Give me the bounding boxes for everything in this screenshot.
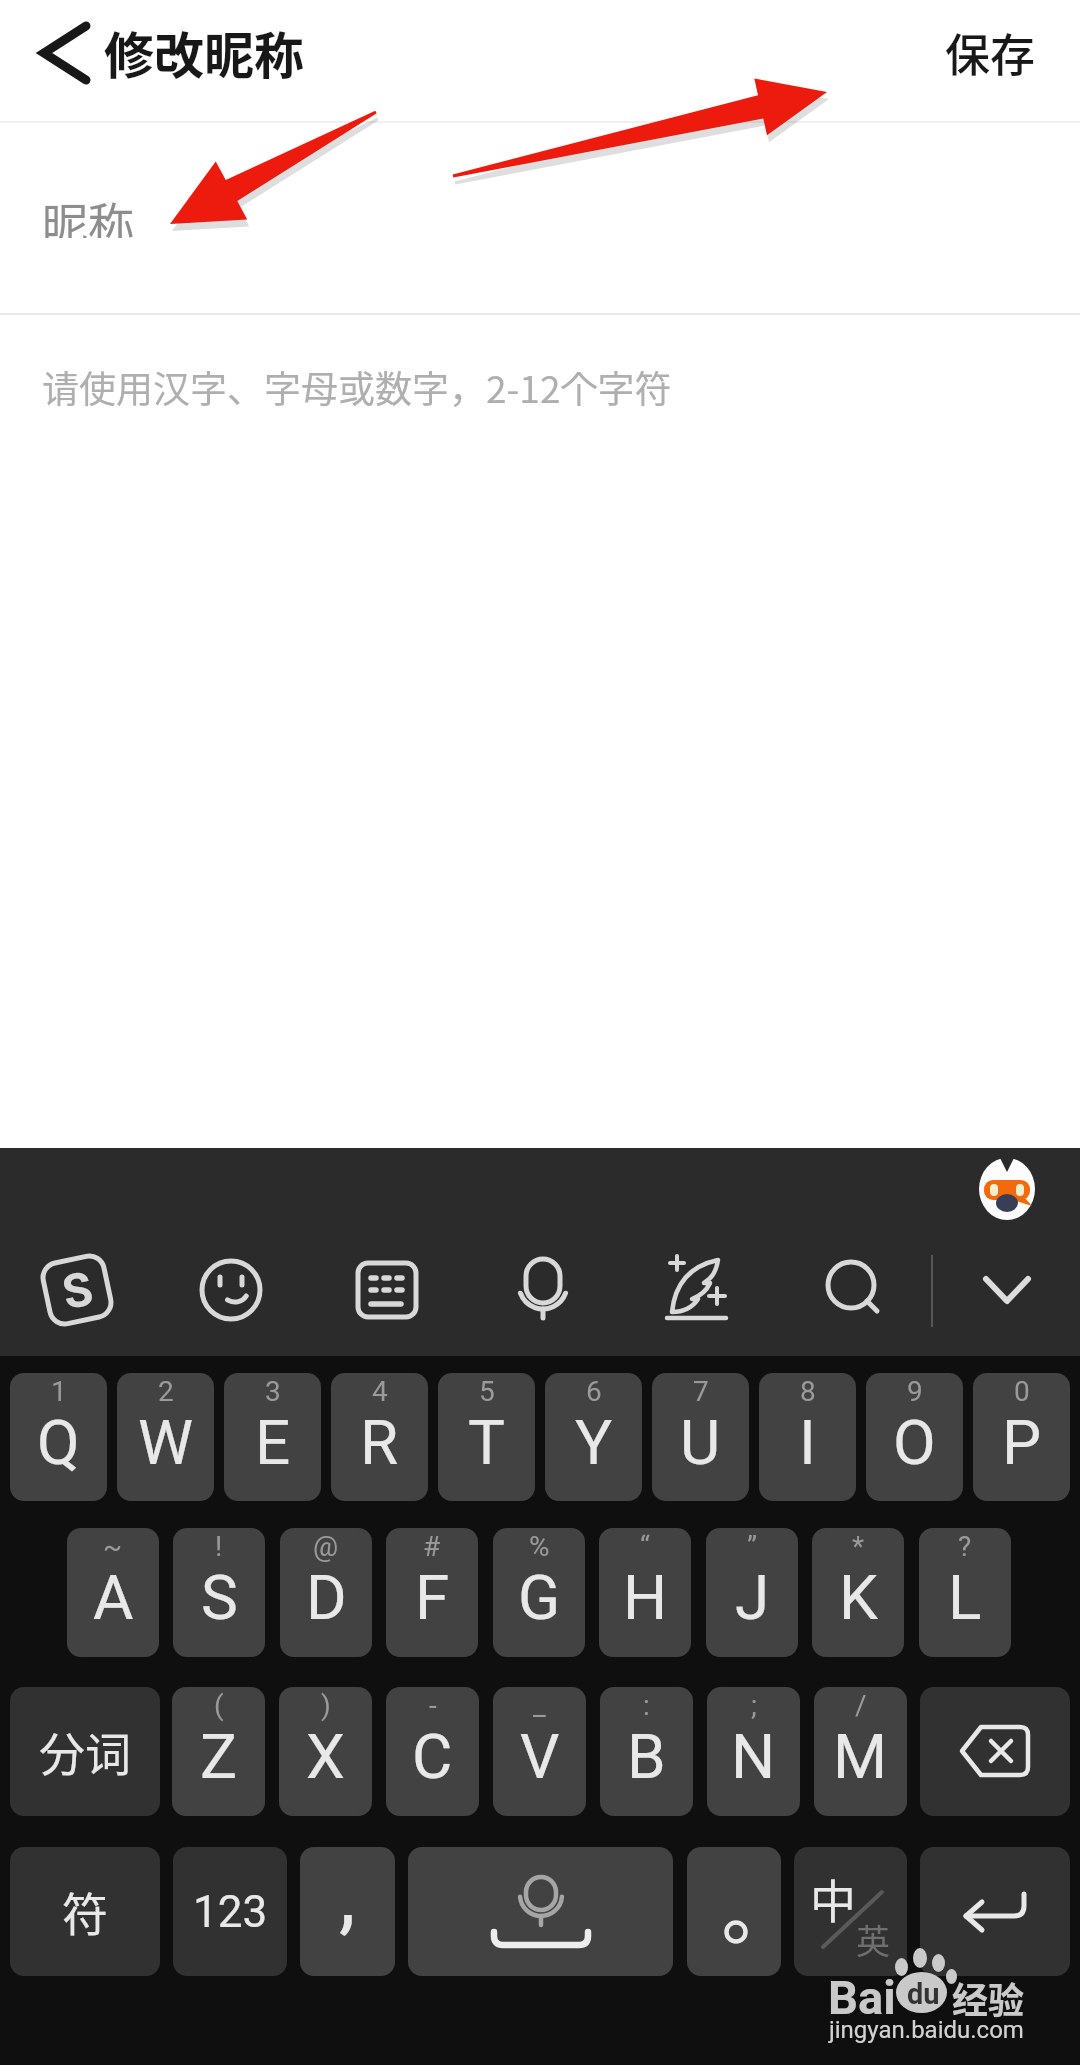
staticText: / xyxy=(855,1689,867,1722)
staticText: : xyxy=(643,1689,650,1722)
staticText: P xyxy=(1002,1406,1042,1479)
staticText: J xyxy=(735,1561,770,1634)
staticText: - xyxy=(429,1689,437,1722)
button[interactable]: % xyxy=(493,1528,585,1657)
button[interactable]: 5 xyxy=(438,1373,535,1501)
staticText: M xyxy=(833,1720,888,1793)
staticText: _ xyxy=(533,1689,546,1722)
staticText: F xyxy=(415,1561,450,1634)
button[interactable]: ” xyxy=(706,1528,798,1657)
staticText: % xyxy=(529,1530,550,1563)
button[interactable]: * xyxy=(812,1528,904,1657)
staticText: 123 xyxy=(193,1886,268,1938)
button[interactable] xyxy=(24,10,104,96)
staticText: 0 xyxy=(1014,1375,1030,1408)
staticText: 1 xyxy=(51,1375,67,1408)
staticText: 保存 xyxy=(945,20,1036,85)
staticText: Z xyxy=(200,1720,238,1793)
button[interactable]: ! xyxy=(173,1528,265,1657)
staticText: ~ xyxy=(103,1530,123,1563)
staticText: 3 xyxy=(265,1375,281,1408)
staticText: 7 xyxy=(693,1375,709,1408)
staticText: G xyxy=(518,1561,561,1634)
button[interactable]: “ xyxy=(599,1528,691,1657)
button[interactable]: , xyxy=(300,1847,395,1976)
staticText: I xyxy=(799,1406,816,1479)
staticText: du xyxy=(907,1977,940,2011)
button[interactable]: 3 xyxy=(224,1373,321,1501)
button[interactable]: 2 xyxy=(117,1373,214,1501)
button[interactable]: _ xyxy=(493,1687,586,1816)
staticText: @ xyxy=(313,1530,339,1563)
staticText: # xyxy=(423,1530,441,1563)
staticText: ) xyxy=(321,1689,331,1722)
staticText: 符 xyxy=(62,1878,108,1945)
staticText: ; xyxy=(751,1689,757,1722)
button[interactable]: 0 xyxy=(973,1373,1070,1501)
button[interactable]: 保存 xyxy=(930,14,1050,90)
button[interactable]: ; xyxy=(707,1687,800,1816)
staticText: 昵称 xyxy=(42,188,134,238)
button[interactable]: - xyxy=(386,1687,479,1816)
staticText: ! xyxy=(215,1530,223,1563)
button[interactable]: S xyxy=(38,1251,116,1329)
staticText: Q xyxy=(37,1406,80,1479)
button[interactable]: ? xyxy=(919,1528,1011,1657)
button[interactable]: ( xyxy=(172,1687,265,1816)
staticText: U xyxy=(680,1406,721,1479)
button[interactable] xyxy=(687,1847,781,1976)
button[interactable] xyxy=(408,1847,673,1976)
staticText: W xyxy=(138,1406,194,1479)
staticText: * xyxy=(852,1530,865,1563)
staticText: 4 xyxy=(372,1375,388,1408)
staticText: H xyxy=(623,1561,668,1634)
staticText: E xyxy=(255,1406,291,1479)
button[interactable]: 分词 xyxy=(10,1687,160,1816)
button[interactable]: 8 xyxy=(759,1373,856,1501)
staticText: 经验 xyxy=(952,1972,1025,2018)
staticText: , xyxy=(339,1847,356,1944)
button[interactable]: 9 xyxy=(866,1373,963,1501)
staticText: 请使用汉字、字母或数字，2-12个字符 xyxy=(42,360,672,412)
staticText: 修改昵称 xyxy=(104,16,304,88)
staticText: K xyxy=(839,1561,878,1634)
staticText: D xyxy=(306,1561,347,1634)
staticText: 中 xyxy=(810,1865,856,1932)
button[interactable] xyxy=(920,1687,1070,1816)
staticText: ? xyxy=(958,1530,972,1563)
button[interactable]: 123 xyxy=(173,1847,287,1976)
button[interactable] xyxy=(920,1847,1070,1976)
staticText: S xyxy=(201,1561,238,1634)
staticText: Y xyxy=(575,1406,613,1479)
staticText: A xyxy=(93,1561,134,1634)
button[interactable]: # xyxy=(386,1528,478,1657)
button[interactable]: 符 xyxy=(10,1847,160,1976)
staticText: 分词 xyxy=(39,1718,131,1785)
button[interactable]: 7 xyxy=(652,1373,749,1501)
button[interactable]: ) xyxy=(279,1687,372,1816)
staticText: O xyxy=(893,1406,936,1479)
staticText: 8 xyxy=(800,1375,816,1408)
staticText: “ xyxy=(640,1530,650,1563)
staticText: X xyxy=(306,1720,345,1793)
button[interactable]: 4 xyxy=(331,1373,428,1501)
staticText: 5 xyxy=(479,1375,495,1408)
button[interactable]: 中 xyxy=(794,1847,907,1976)
staticText: 英 xyxy=(856,1915,890,1964)
button[interactable]: 1 xyxy=(10,1373,107,1501)
staticText: R xyxy=(360,1406,399,1479)
staticText: C xyxy=(412,1720,453,1793)
staticText: 6 xyxy=(586,1375,602,1408)
button[interactable]: ~ xyxy=(67,1528,159,1657)
staticText: Bai xyxy=(828,1970,896,2022)
button[interactable]: / xyxy=(814,1687,907,1816)
button[interactable]: 6 xyxy=(545,1373,642,1501)
staticText: ( xyxy=(214,1689,224,1722)
staticText: ” xyxy=(747,1530,758,1563)
button[interactable]: : xyxy=(600,1687,693,1816)
button[interactable]: @ xyxy=(280,1528,372,1657)
staticText: V xyxy=(520,1720,560,1793)
staticText: 9 xyxy=(907,1375,923,1408)
staticText: S xyxy=(58,1260,97,1320)
staticText: B xyxy=(627,1720,666,1793)
